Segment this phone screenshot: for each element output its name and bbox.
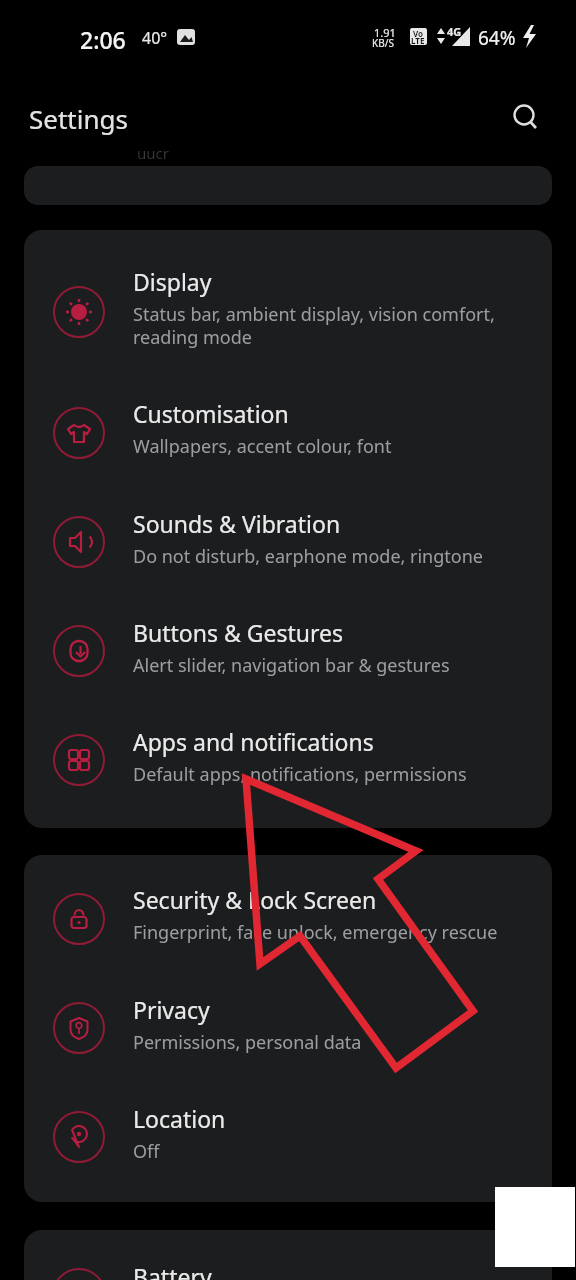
staticText: Do not disturb, earphone mode, ringtone (133, 544, 483, 569)
staticText: Location (133, 1103, 226, 1134)
staticText: Permissions, personal data (133, 1030, 362, 1055)
staticText: Battery (133, 1261, 212, 1280)
button[interactable]: Buttons & Gestures (24, 595, 552, 705)
staticText: Sounds & Vibration (133, 508, 341, 539)
button[interactable]: Battery (24, 1240, 552, 1280)
button[interactable]: Sounds & Vibration (24, 486, 552, 596)
button[interactable]: Apps and notifications (24, 704, 552, 814)
staticText: 2:06 (80, 24, 126, 55)
staticText: Wallpapers, accent colour, font (133, 434, 392, 459)
button[interactable]: Display (24, 244, 552, 364)
staticText: 1.91 (374, 25, 396, 40)
staticText: 40° (142, 27, 168, 49)
button[interactable]: Location (24, 1081, 552, 1191)
staticText: 64% (478, 25, 516, 51)
staticText: Vo (413, 28, 424, 39)
staticText: Default apps, notifications, permissions (133, 762, 467, 787)
staticText: Privacy (133, 994, 210, 1025)
button[interactable]: Customisation (24, 376, 552, 486)
staticText: Status bar, ambient display, vision comf… (133, 302, 495, 349)
button[interactable]: Privacy (24, 972, 552, 1082)
staticText: Security & Lock Screen (133, 884, 377, 915)
staticText: KB/S (372, 36, 394, 50)
button[interactable] (500, 95, 548, 143)
staticText: Apps and notifications (133, 726, 374, 757)
staticText: Buttons & Gestures (133, 617, 343, 648)
staticText: Settings (29, 101, 128, 136)
staticText: 4G (447, 24, 462, 39)
staticText: Display (133, 266, 212, 297)
staticText: Customisation (133, 398, 289, 429)
staticText: Fingerprint, face unlock, emergency resc… (133, 920, 498, 945)
staticText: LTE (411, 35, 425, 46)
staticText: uucr (137, 143, 169, 163)
staticText: Off (133, 1139, 160, 1164)
button[interactable]: Security & Lock Screen (24, 862, 552, 972)
staticText: Alert slider, navigation bar & gestures (133, 653, 450, 678)
